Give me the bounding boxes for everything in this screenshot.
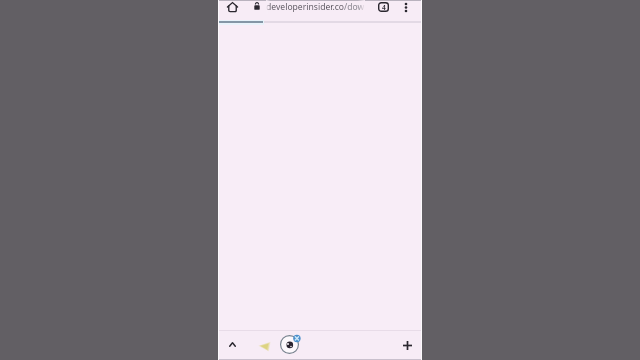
button[interactable]: Bubble	[259, 342, 270, 351]
button[interactable]: Site information	[254, 2, 260, 10]
button[interactable]: Home	[227, 2, 238, 12]
button[interactable]: Switch or close tabs	[378, 2, 389, 12]
button[interactable]: Address bar	[266, 0, 365, 14]
button[interactable]: New tab	[403, 341, 412, 350]
staticText: 4	[382, 3, 386, 12]
button[interactable]: More options	[403, 2, 409, 13]
button[interactable]: Expand toolbar	[229, 341, 236, 348]
staticText: developerinsider.co/dow	[266, 1, 365, 13]
button[interactable]: Dismiss bubble	[280, 335, 301, 354]
